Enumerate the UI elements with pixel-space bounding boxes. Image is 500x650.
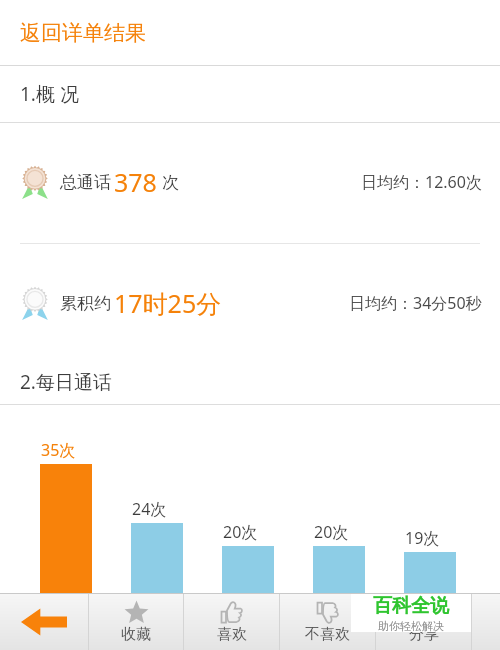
staticText: 日均约：12.60次 — [361, 171, 482, 193]
staticText: 累积约 — [60, 293, 111, 314]
staticText: 2.每日通话 — [20, 369, 112, 395]
staticText: 收藏 — [121, 625, 151, 644]
button[interactable]: 总通话 — [0, 123, 500, 241]
button[interactable]: 返回 — [0, 594, 88, 650]
staticText: 次 — [162, 172, 179, 193]
staticText: 返回详单结果 — [20, 20, 146, 46]
staticText: 1.概 况 — [20, 81, 79, 107]
staticText: 20次 — [314, 521, 349, 543]
button[interactable]: 喜欢 — [184, 594, 279, 650]
button[interactable]: 更多 — [472, 594, 500, 650]
staticText: 助你轻松解决 — [378, 619, 444, 632]
staticText: 24次 — [132, 498, 167, 520]
button[interactable]: 不喜欢 — [280, 594, 375, 650]
button[interactable]: 返回详单结果 — [0, 0, 500, 65]
staticText: 378 — [114, 165, 157, 199]
staticText: 20次 — [223, 521, 258, 543]
staticText: 喜欢 — [217, 625, 247, 644]
staticText: 百科全说 — [373, 594, 449, 618]
staticText: 17时25分 — [114, 286, 222, 320]
button[interactable]: 累积约 — [0, 244, 500, 362]
staticText: 总通话 — [60, 172, 111, 193]
staticText: 35次 — [41, 439, 76, 461]
button[interactable]: 收藏 — [89, 594, 183, 650]
staticText: 分享 — [409, 625, 439, 644]
button[interactable]: 分享 — [376, 594, 471, 650]
staticText: 19次 — [405, 527, 440, 549]
staticText: 日均约：34分50秒 — [349, 292, 482, 314]
staticText: 不喜欢 — [305, 625, 350, 644]
